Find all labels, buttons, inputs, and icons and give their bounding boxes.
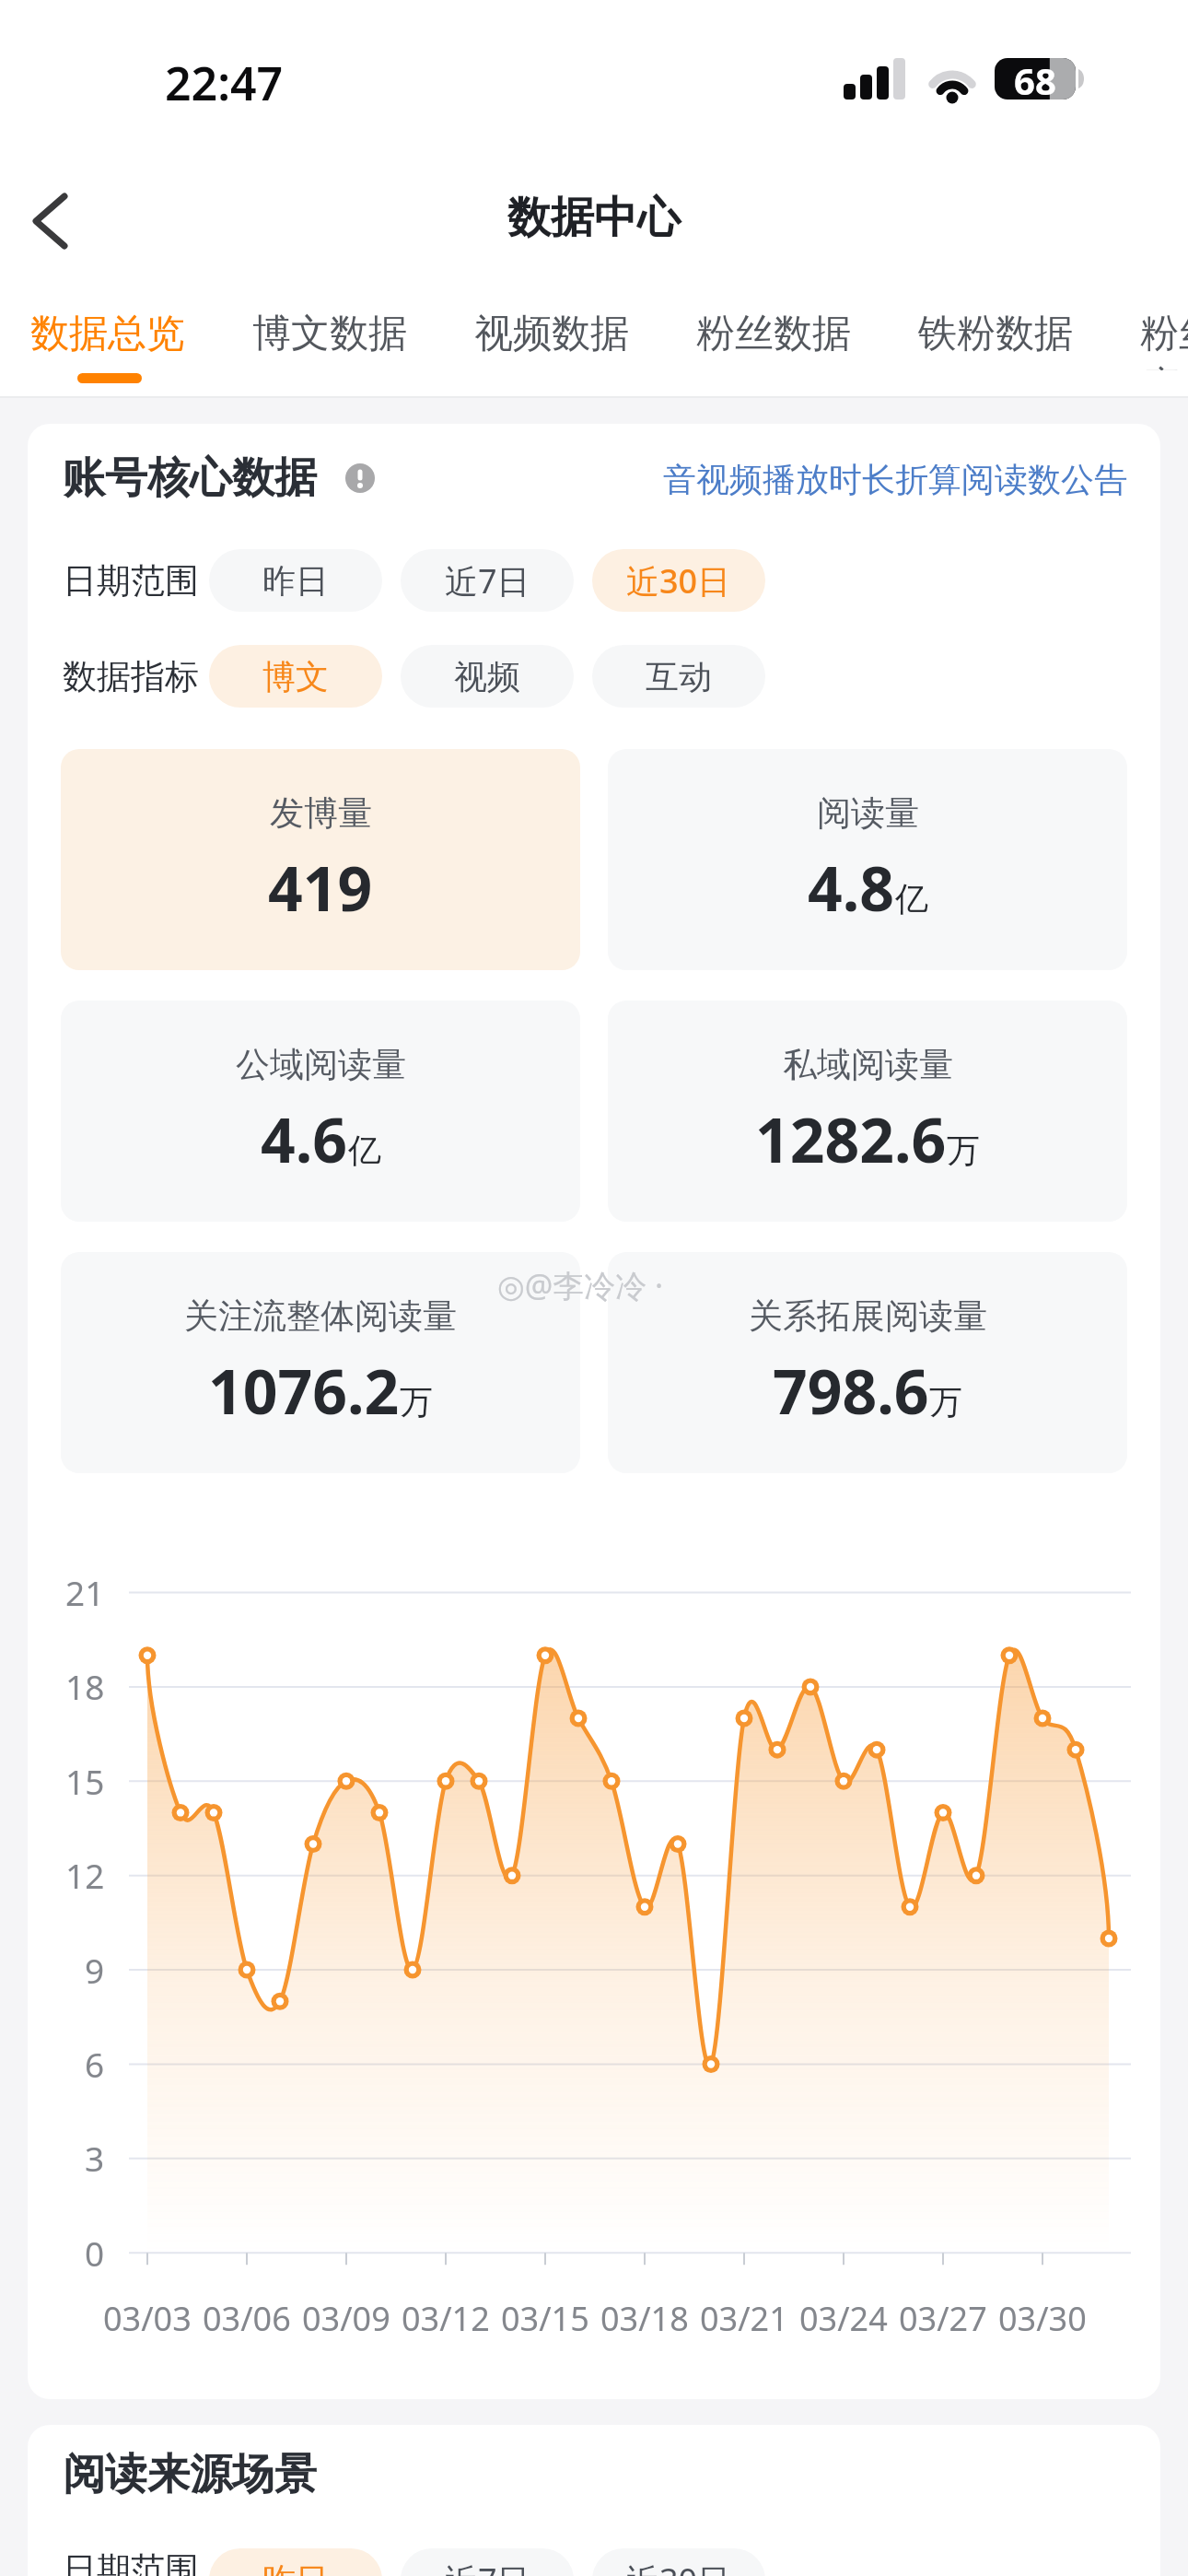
staticText: 15 (65, 1758, 105, 1804)
staticText: 03/27 (899, 2296, 987, 2338)
staticText: 万 (929, 1381, 962, 1423)
staticText: 粉丝数据 (696, 310, 851, 358)
staticText: 互动 (646, 656, 712, 697)
button[interactable]: 博文 (209, 645, 382, 708)
staticText: 亿 (895, 878, 928, 919)
staticText: 昨日 (262, 2559, 329, 2576)
staticText: 近30日 (626, 2558, 731, 2576)
staticText: 03/24 (799, 2296, 888, 2338)
staticText: 03/09 (302, 2296, 390, 2338)
staticText: 3 (85, 2135, 105, 2181)
button[interactable]: 数据总览 (30, 310, 187, 370)
staticText: 12 (65, 1852, 105, 1898)
button[interactable]: 博文数据 (252, 310, 409, 370)
button[interactable]: 粉丝数据 (696, 310, 853, 370)
staticText: 私域阅读量 (783, 1043, 953, 1085)
staticText: 0 (85, 2230, 105, 2276)
staticText: 音视频播放时长折算阅读数公告 (663, 459, 1127, 500)
staticText: 昨日 (262, 560, 329, 602)
staticText: 18 (65, 1663, 105, 1709)
button[interactable]: 近30日 (592, 2548, 765, 2576)
staticText: 关系拓展阅读量 (749, 1294, 987, 1337)
button[interactable]: 近7日 (401, 2548, 574, 2576)
button[interactable]: 铁粉数据 (918, 310, 1075, 370)
staticText: 阅读来源场景 (63, 2448, 317, 2501)
button[interactable] (9, 180, 92, 263)
staticText: 03/30 (998, 2296, 1087, 2338)
staticText: 03/18 (600, 2296, 689, 2338)
staticText: ◎@李冷冷 · (497, 1264, 664, 1305)
button[interactable]: 粉丝亲密度 (1140, 310, 1188, 370)
staticText: 铁粉数据 (918, 310, 1073, 358)
staticText: 万 (400, 1381, 433, 1423)
button[interactable]: 音视频播放时长折算阅读数公告 (658, 457, 1127, 501)
staticText: 数据指标 (63, 655, 199, 698)
staticText: 4.8 (808, 846, 895, 929)
button[interactable]: 昨日 (209, 2548, 382, 2576)
staticText: 关注流整体阅读量 (184, 1294, 457, 1337)
button[interactable]: 近7日 (401, 549, 574, 612)
staticText: 419 (268, 846, 373, 929)
button[interactable]: 视频数据 (474, 310, 631, 370)
staticText: 6 (85, 2041, 105, 2087)
staticText: 1282.6 (755, 1097, 947, 1180)
staticText: 视频 (454, 656, 520, 697)
button[interactable]: 互动 (592, 645, 765, 708)
staticText: 22:47 (165, 52, 284, 105)
staticText: 数据中心 (507, 191, 681, 245)
staticText: 亿 (348, 1130, 381, 1171)
staticText: 近7日 (445, 558, 530, 603)
staticText: 近7日 (445, 2558, 530, 2576)
staticText: 798.6 (773, 1349, 929, 1432)
staticText: 03/21 (700, 2296, 788, 2338)
staticText: 近30日 (626, 558, 731, 603)
staticText: 日期范围 (63, 559, 199, 603)
staticText: 68 (1014, 55, 1056, 101)
staticText: 博文 (262, 656, 329, 697)
staticText: 9 (85, 1947, 105, 1993)
staticText: 03/06 (203, 2296, 291, 2338)
staticText: 1076.2 (208, 1349, 400, 1432)
staticText: 03/12 (402, 2296, 490, 2338)
staticText: 粉丝亲密度 (1140, 310, 1188, 370)
staticText: 阅读量 (817, 791, 919, 834)
staticText: 03/03 (103, 2296, 192, 2338)
staticText: 公域阅读量 (236, 1043, 406, 1085)
staticText: 账号核心数据 (63, 451, 317, 505)
staticText: 博文数据 (252, 310, 407, 358)
button[interactable]: 近30日 (592, 549, 765, 612)
button[interactable]: 昨日 (209, 549, 382, 612)
staticText: 视频数据 (474, 310, 629, 358)
button[interactable]: 视频 (401, 645, 574, 708)
staticText: 万 (947, 1130, 980, 1171)
staticText: 03/15 (501, 2296, 589, 2338)
staticText: 日期范围 (63, 2548, 199, 2576)
staticText: 21 (65, 1569, 105, 1615)
staticText: 发博量 (270, 791, 372, 834)
staticText: 数据总览 (30, 310, 185, 358)
staticText: 4.6 (261, 1097, 348, 1180)
